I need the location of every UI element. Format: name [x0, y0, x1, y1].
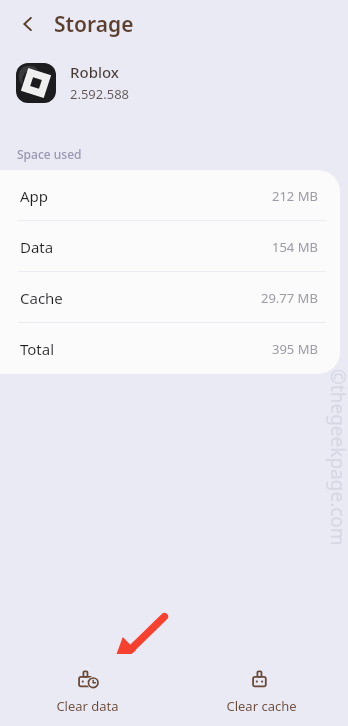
- staticText: Cache: [20, 288, 63, 308]
- staticText: Data: [20, 237, 54, 257]
- staticText: 395 MB: [272, 340, 318, 358]
- staticText: Storage: [54, 10, 134, 39]
- staticText: Roblox: [70, 62, 120, 82]
- staticText: Total: [20, 339, 55, 359]
- button[interactable]: Cache: [0, 272, 340, 323]
- staticText: 154 MB: [272, 238, 318, 256]
- staticText: Clear data: [56, 697, 119, 715]
- button[interactable]: Back: [12, 8, 44, 40]
- staticText: ©thegeekpage.com: [325, 369, 348, 546]
- button[interactable]: Clear data: [0, 660, 174, 721]
- staticText: 29.77 MB: [261, 289, 318, 307]
- button[interactable]: App: [0, 170, 340, 221]
- staticText: Space used: [17, 146, 82, 162]
- staticText: Clear cache: [226, 697, 297, 715]
- button[interactable]: Clear cache: [174, 660, 348, 721]
- staticText: App: [20, 186, 49, 206]
- button[interactable]: Data: [0, 221, 340, 272]
- staticText: 212 MB: [272, 187, 318, 205]
- staticText: 2.592.588: [70, 85, 130, 103]
- button[interactable]: Total: [0, 323, 340, 374]
